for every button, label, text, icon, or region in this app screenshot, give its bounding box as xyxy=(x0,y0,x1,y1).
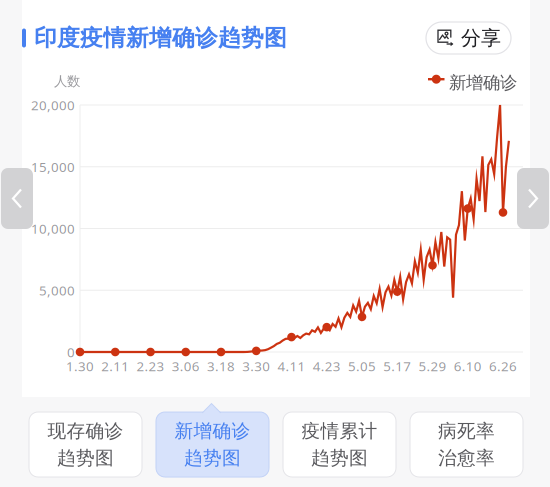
staticText: 15,000 xyxy=(31,158,75,176)
staticText: 治愈率 xyxy=(438,446,495,469)
staticText: 3.18 xyxy=(207,357,235,375)
staticText: 1.30 xyxy=(66,357,94,375)
staticText: 4.11 xyxy=(277,357,305,375)
staticText: 3.30 xyxy=(242,357,270,375)
button[interactable]: 下一张 xyxy=(517,168,549,229)
staticText: 趋势图 xyxy=(57,446,114,469)
button[interactable]: 新增确诊 xyxy=(156,412,269,477)
staticText: 5.29 xyxy=(418,357,446,375)
staticText: 新增确诊 xyxy=(174,420,250,442)
staticText: 2.11 xyxy=(101,357,129,375)
staticText: 现存确诊 xyxy=(47,420,123,442)
button[interactable]: 上一张 xyxy=(1,168,33,229)
button[interactable]: 病死率 xyxy=(410,412,523,477)
staticText: 趋势图 xyxy=(184,446,241,469)
staticText: 疫情累计 xyxy=(301,420,377,442)
button[interactable]: 疫情累计 xyxy=(283,412,396,477)
staticText: 5.17 xyxy=(383,357,411,375)
staticText: 病死率 xyxy=(438,420,495,442)
staticText: 2.23 xyxy=(136,357,164,375)
staticText: 5.05 xyxy=(348,357,376,375)
staticText: 分享 xyxy=(461,26,501,50)
staticText: 0 xyxy=(67,343,75,361)
staticText: 6.26 xyxy=(489,357,517,375)
staticText: 4.23 xyxy=(313,357,341,375)
staticText: 5,000 xyxy=(39,281,75,299)
staticText: 3.06 xyxy=(172,357,200,375)
staticText: 10,000 xyxy=(31,220,75,237)
button[interactable]: 分享 xyxy=(426,22,511,54)
staticText: 人数 xyxy=(54,73,80,89)
staticText: 20,000 xyxy=(31,96,75,114)
button[interactable]: 现存确诊 xyxy=(29,412,142,477)
staticText: 印度疫情新增确诊趋势图 xyxy=(34,24,287,52)
staticText: 趋势图 xyxy=(311,446,368,469)
staticText: 6.10 xyxy=(454,357,482,375)
staticText: 新增确诊 xyxy=(449,72,517,93)
